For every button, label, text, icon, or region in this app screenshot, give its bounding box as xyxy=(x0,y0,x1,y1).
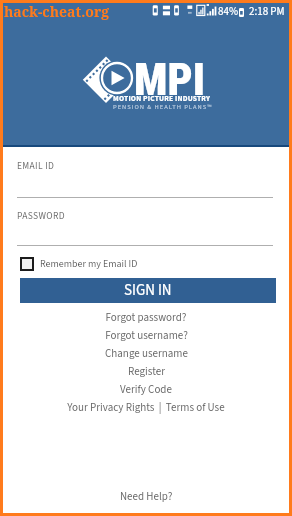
staticText: SIGN IN xyxy=(124,280,172,301)
button[interactable]: Forgot username? xyxy=(3,327,289,345)
button[interactable]: Remember my Email ID xyxy=(20,257,138,271)
staticText: PASSWORD xyxy=(17,209,65,223)
button[interactable]: Change username xyxy=(3,345,289,363)
staticText: EMAIL ID xyxy=(17,159,55,173)
button[interactable]: Register xyxy=(3,363,289,381)
staticText: Remember my Email ID xyxy=(40,257,138,271)
button[interactable]: Verify Code xyxy=(3,381,289,399)
staticText: 84% xyxy=(218,4,238,20)
staticText: Verify Code xyxy=(120,382,172,398)
staticText: MOTION PICTURE INDUSTRY xyxy=(113,93,211,104)
staticText: Need Help? xyxy=(120,489,173,505)
button[interactable]: Your Privacy Rights | Terms of Use xyxy=(3,399,289,417)
button[interactable]: Forgot password? xyxy=(3,309,289,327)
staticText: hack-cheat.org xyxy=(4,2,110,21)
staticText: Your Privacy Rights | Terms of Use xyxy=(67,400,225,416)
button[interactable]: SIGN IN xyxy=(20,278,276,303)
button[interactable]: Need Help? xyxy=(3,488,289,506)
staticText: MPI xyxy=(134,54,206,106)
staticText: Register xyxy=(128,364,165,380)
staticText: Forgot username? xyxy=(105,328,188,344)
staticText: Forgot password? xyxy=(105,310,187,326)
staticText: 2:18 PM xyxy=(249,4,285,20)
staticText: PENSION & HEALTH PLANS™ xyxy=(113,102,213,111)
staticText: Change username xyxy=(105,346,188,362)
